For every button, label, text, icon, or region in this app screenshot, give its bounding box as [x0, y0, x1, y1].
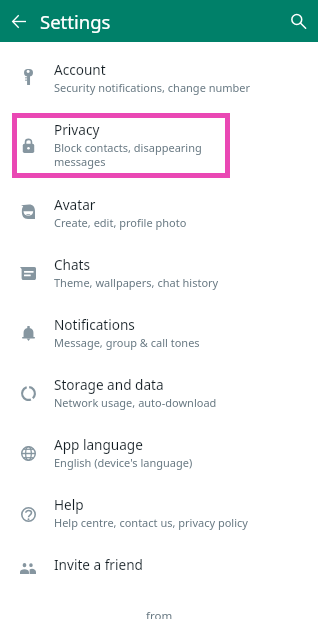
button[interactable]: Search	[278, 1, 318, 41]
staticText: Help centre, contact us, privacy policy	[54, 515, 248, 530]
button[interactable]: Privacy	[0, 113, 318, 188]
staticText: Account	[54, 60, 106, 79]
button[interactable]: Help	[0, 488, 318, 548]
staticText: Help	[54, 495, 84, 514]
staticText: Security notifications, change number	[54, 80, 251, 95]
button[interactable]: Avatar	[0, 188, 318, 248]
staticText: Notifications	[54, 315, 135, 334]
staticText: English (device's language)	[54, 455, 193, 470]
staticText: Settings	[40, 9, 111, 34]
staticText: Storage and data	[54, 375, 164, 394]
staticText: Network usage, auto-download	[54, 395, 217, 410]
button[interactable]: Back	[0, 2, 38, 40]
button[interactable]: Storage and data	[0, 368, 318, 428]
staticText: Privacy	[54, 120, 100, 139]
staticText: Avatar	[54, 195, 96, 214]
button[interactable]: Chats	[0, 248, 318, 308]
staticText: Chats	[54, 255, 91, 274]
button[interactable]: App language	[0, 428, 318, 488]
staticText: Invite a friend	[54, 555, 143, 574]
staticText: from	[146, 608, 173, 619]
button[interactable]: Account	[0, 53, 318, 113]
staticText: Block contacts, disappearing messages	[54, 140, 202, 170]
button[interactable]: Notifications	[0, 308, 318, 368]
staticText: Theme, wallpapers, chat history	[54, 275, 219, 290]
staticText: Create, edit, profile photo	[54, 215, 187, 230]
staticText: Message, group & call tones	[54, 335, 200, 350]
button[interactable]: Invite a friend	[0, 548, 318, 608]
staticText: App language	[54, 435, 143, 454]
